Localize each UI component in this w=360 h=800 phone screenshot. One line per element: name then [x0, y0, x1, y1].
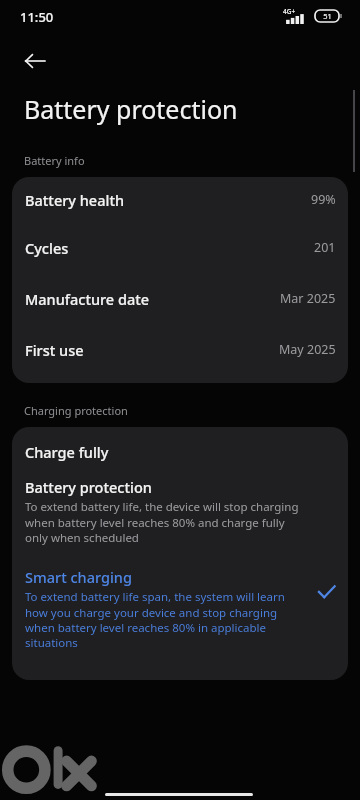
- staticText: 201: [314, 239, 336, 256]
- staticText: 99%: [311, 191, 336, 208]
- staticText: Charge fully: [25, 442, 109, 462]
- button[interactable]: Charge fully: [12, 427, 348, 471]
- staticText: Battery health: [25, 190, 125, 210]
- staticText: Cycles: [25, 238, 69, 258]
- staticText: To extend battery life span, the system …: [25, 589, 300, 650]
- staticText: To extend battery life, the device will …: [25, 499, 308, 545]
- button[interactable]: Manufacture date: [12, 273, 348, 324]
- button[interactable]: First use: [12, 324, 348, 375]
- staticText: Battery protection: [25, 477, 152, 497]
- staticText: Manufacture date: [25, 289, 150, 309]
- button[interactable]: Cycles: [12, 222, 348, 273]
- staticText: 11:50: [20, 8, 54, 26]
- staticText: 4G+: [283, 7, 296, 16]
- staticText: Charging protection: [24, 403, 128, 418]
- staticText: May 2025: [279, 341, 336, 358]
- staticText: Battery protection: [24, 92, 238, 126]
- staticText: First use: [25, 340, 84, 360]
- staticText: Smart charging: [25, 567, 132, 587]
- button[interactable]: Battery protection: [12, 471, 348, 558]
- button[interactable]: Battery health: [12, 177, 348, 222]
- staticText: Battery info: [24, 153, 85, 168]
- staticText: 51: [323, 11, 332, 21]
- button[interactable]: Back: [18, 44, 52, 78]
- staticText: Mar 2025: [280, 290, 336, 307]
- button[interactable]: Smart charging: [12, 558, 348, 658]
